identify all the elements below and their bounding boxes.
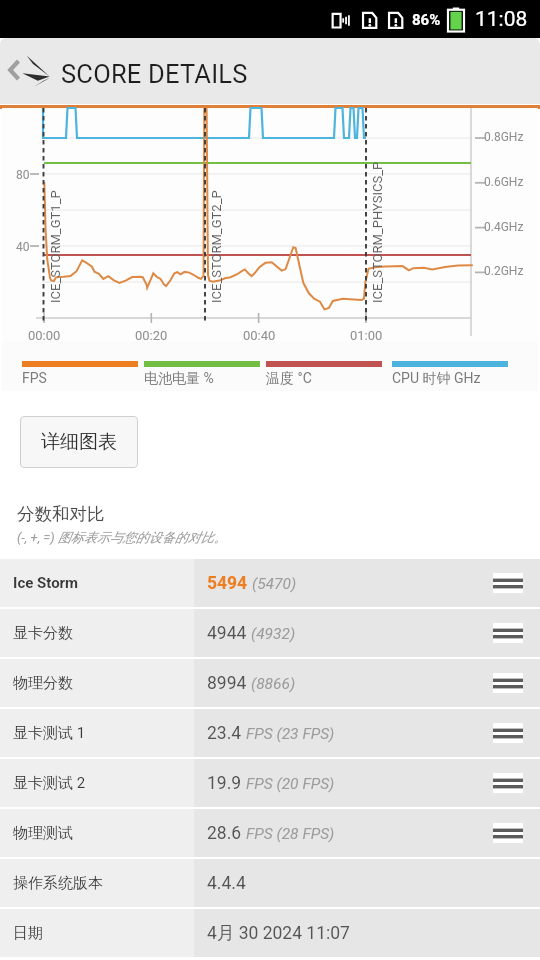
staticText: FPS (28 FPS)	[246, 825, 335, 843]
other: Equal to your device	[493, 673, 523, 693]
staticText: 显卡分数	[13, 624, 73, 643]
other: Equal to your device	[493, 623, 523, 643]
staticText: Ice Storm	[13, 574, 79, 592]
staticText: 电池电量 %	[144, 370, 214, 388]
staticText: 23.4	[207, 723, 242, 744]
staticText: 00:00	[28, 328, 61, 343]
button[interactable]: 显卡分数	[0, 609, 540, 657]
staticText: 0.8GHz	[484, 130, 524, 144]
staticText: 0.4GHz	[484, 220, 524, 234]
staticText: (-, +, =) 图标表示与您的设备的对比。	[17, 529, 227, 545]
other: Equal to your device	[493, 773, 523, 793]
staticText: 物理分数	[13, 674, 73, 693]
staticText: 温度 °C	[266, 370, 312, 388]
staticText: 日期	[13, 924, 43, 943]
staticText: 0.6GHz	[484, 175, 524, 189]
staticText: FPS	[22, 370, 47, 386]
button[interactable]: 日期	[0, 909, 540, 957]
staticText: 01:00	[350, 328, 383, 343]
button[interactable]: 物理测试	[0, 809, 540, 857]
staticText: ICE_STORM_PHYSICS_P	[370, 161, 385, 303]
staticText: 4月 30 2024 11:07	[207, 922, 350, 944]
staticText: 操作系统版本	[13, 874, 103, 893]
staticText: 详细图表	[41, 430, 117, 454]
other: Equal to your device	[493, 573, 523, 593]
other: Equal to your device	[493, 823, 523, 843]
staticText: 8994	[207, 673, 247, 694]
button[interactable]: Back	[2, 38, 60, 104]
staticText: FPS (23 FPS)	[246, 725, 335, 743]
button[interactable]: 物理分数	[0, 659, 540, 707]
staticText: (4932)	[251, 625, 296, 643]
staticText: 4944	[207, 623, 247, 644]
staticText: 28.6	[207, 823, 242, 844]
staticText: 00:20	[135, 328, 168, 343]
staticText: 显卡测试 1	[13, 724, 86, 743]
button[interactable]: 操作系统版本	[0, 859, 540, 907]
other: Equal to your device	[493, 723, 523, 743]
staticText: 分数和对比	[17, 503, 105, 525]
staticText: 86%	[412, 11, 441, 29]
staticText: (8866)	[251, 675, 296, 693]
staticText: SCORE DETAILS	[61, 59, 248, 89]
staticText: 4.4.4	[207, 873, 246, 894]
staticText: 19.9	[207, 773, 242, 794]
staticText: ICE_STORM_GT1_P	[48, 190, 63, 303]
staticText: 物理测试	[13, 824, 73, 843]
button[interactable]: Ice Storm	[0, 559, 540, 607]
button[interactable]: 详细图表	[20, 416, 138, 468]
button[interactable]: 显卡测试 2	[0, 759, 540, 807]
staticText: 00:40	[243, 328, 276, 343]
staticText: CPU 时钟 GHz	[392, 370, 481, 388]
staticText: (5470)	[252, 575, 297, 593]
staticText: 11:08	[475, 7, 528, 32]
staticText: 0.2GHz	[484, 264, 524, 278]
staticText: 5494	[207, 573, 248, 594]
button[interactable]: 显卡测试 1	[0, 709, 540, 757]
staticText: FPS (20 FPS)	[246, 775, 335, 793]
staticText: ICE_STORM_GT2_P	[209, 190, 224, 303]
staticText: 显卡测试 2	[13, 774, 86, 793]
staticText: 40	[16, 240, 30, 254]
staticText: 80	[16, 168, 30, 182]
